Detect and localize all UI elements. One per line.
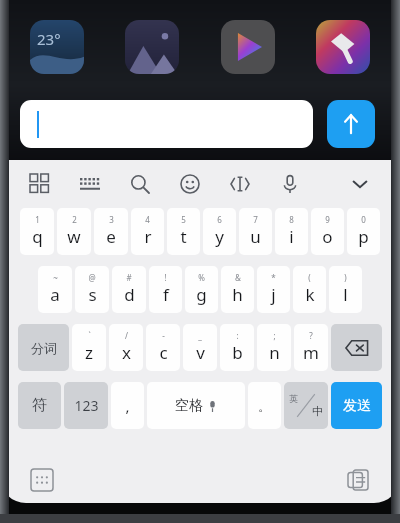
button[interactable]: 0 xyxy=(347,208,380,255)
staticText: & xyxy=(235,272,241,283)
staticText: b xyxy=(232,341,243,364)
button[interactable]: # xyxy=(112,266,146,313)
button[interactable]: 分词 xyxy=(18,324,69,371)
button[interactable]: Clipboard xyxy=(344,466,372,494)
staticText: 发送 xyxy=(343,397,371,415)
staticText: d xyxy=(124,283,135,306)
staticText: 中 xyxy=(312,404,323,418)
button[interactable]: 3 xyxy=(94,208,128,255)
staticText: : xyxy=(236,330,239,341)
button[interactable]: Hide keyboard xyxy=(345,169,375,199)
staticText: x xyxy=(122,341,131,364)
staticText: # xyxy=(126,272,132,283)
button[interactable]: 。 xyxy=(248,382,281,429)
staticText: 123 xyxy=(74,396,99,415)
staticText: 符 xyxy=(32,396,47,415)
staticText: a xyxy=(50,283,60,306)
staticText: e xyxy=(106,225,116,248)
staticText: ( xyxy=(308,272,311,283)
button[interactable]: Video xyxy=(221,20,275,74)
staticText: s xyxy=(88,283,97,306)
button[interactable]: Send xyxy=(327,100,375,148)
staticText: m xyxy=(303,341,319,364)
button[interactable]: 123 xyxy=(64,382,108,429)
staticText: 8 xyxy=(289,214,294,225)
staticText: 23° xyxy=(37,29,61,49)
button[interactable]: 9 xyxy=(311,208,344,255)
staticText: j xyxy=(271,283,276,306)
button[interactable]: ! xyxy=(149,266,182,313)
button[interactable]: Switch Chinese English xyxy=(284,382,328,429)
staticText: t xyxy=(180,225,187,248)
staticText: ! xyxy=(164,272,167,283)
button[interactable]: % xyxy=(185,266,218,313)
button[interactable]: Emoji xyxy=(175,169,205,199)
button[interactable]: 1 xyxy=(20,208,54,255)
staticText: 7 xyxy=(253,214,258,225)
staticText: 0 xyxy=(361,214,366,225)
staticText: l xyxy=(343,283,348,306)
button[interactable]: 8 xyxy=(275,208,308,255)
staticText: y xyxy=(215,225,224,248)
staticText: o xyxy=(322,225,333,248)
button[interactable]: Gallery xyxy=(125,20,179,74)
staticText: k xyxy=(305,283,315,306)
button[interactable]: Apps xyxy=(25,169,55,199)
button[interactable]: @ xyxy=(75,266,109,313)
button[interactable]: Weather xyxy=(30,20,84,74)
staticText: g xyxy=(196,283,207,306)
staticText: * xyxy=(271,272,276,283)
button[interactable]: 5 xyxy=(167,208,200,255)
button[interactable]: Edit text xyxy=(225,169,255,199)
button[interactable]: / xyxy=(109,324,143,371)
staticText: 英 xyxy=(289,393,298,404)
button[interactable]: ~ xyxy=(38,266,72,313)
button[interactable]: - xyxy=(146,324,180,371)
button[interactable]: 2 xyxy=(57,208,91,255)
staticText: w xyxy=(67,225,81,248)
button[interactable]: Search xyxy=(125,169,155,199)
staticText: - xyxy=(162,330,165,341)
button[interactable]: ? xyxy=(294,324,328,371)
staticText: ? xyxy=(309,330,313,341)
staticText: ) xyxy=(344,272,347,283)
staticText: 5 xyxy=(181,214,186,225)
button[interactable]: ; xyxy=(257,324,291,371)
staticText: f xyxy=(163,283,169,306)
button[interactable]: Themes xyxy=(316,20,370,74)
button[interactable]: & xyxy=(221,266,254,313)
staticText: ; xyxy=(273,330,276,341)
staticText: , xyxy=(125,396,130,416)
staticText: q xyxy=(32,225,43,248)
staticText: n xyxy=(269,341,280,364)
button[interactable]: Keyboard layout xyxy=(75,169,105,199)
button[interactable]: ) xyxy=(329,266,362,313)
staticText: % xyxy=(198,272,205,283)
staticText: 1 xyxy=(35,214,40,225)
staticText: u xyxy=(250,225,261,248)
button[interactable]: Switch keyboard xyxy=(28,466,56,494)
button[interactable]: Voice input xyxy=(275,169,305,199)
button[interactable]: 4 xyxy=(131,208,164,255)
button[interactable]: * xyxy=(257,266,290,313)
staticText: 9 xyxy=(325,214,330,225)
button[interactable]: ( xyxy=(293,266,326,313)
button[interactable] xyxy=(20,100,313,148)
button[interactable]: _ xyxy=(183,324,217,371)
button[interactable]: 发送 xyxy=(331,382,382,429)
button[interactable]: 7 xyxy=(239,208,272,255)
staticText: _ xyxy=(198,330,202,341)
staticText: 4 xyxy=(145,214,150,225)
button[interactable]: 6 xyxy=(203,208,236,255)
button[interactable]: Backspace xyxy=(331,324,382,371)
staticText: p xyxy=(358,225,369,248)
button[interactable]: : xyxy=(220,324,254,371)
button[interactable]: ` xyxy=(72,324,106,371)
staticText: v xyxy=(196,341,205,364)
staticText: ~ xyxy=(53,272,58,283)
button[interactable]: , xyxy=(111,382,144,429)
button[interactable]: 空格 xyxy=(147,382,245,429)
staticText: r xyxy=(144,225,152,248)
button[interactable]: 符 xyxy=(18,382,61,429)
staticText: ` xyxy=(88,330,91,341)
